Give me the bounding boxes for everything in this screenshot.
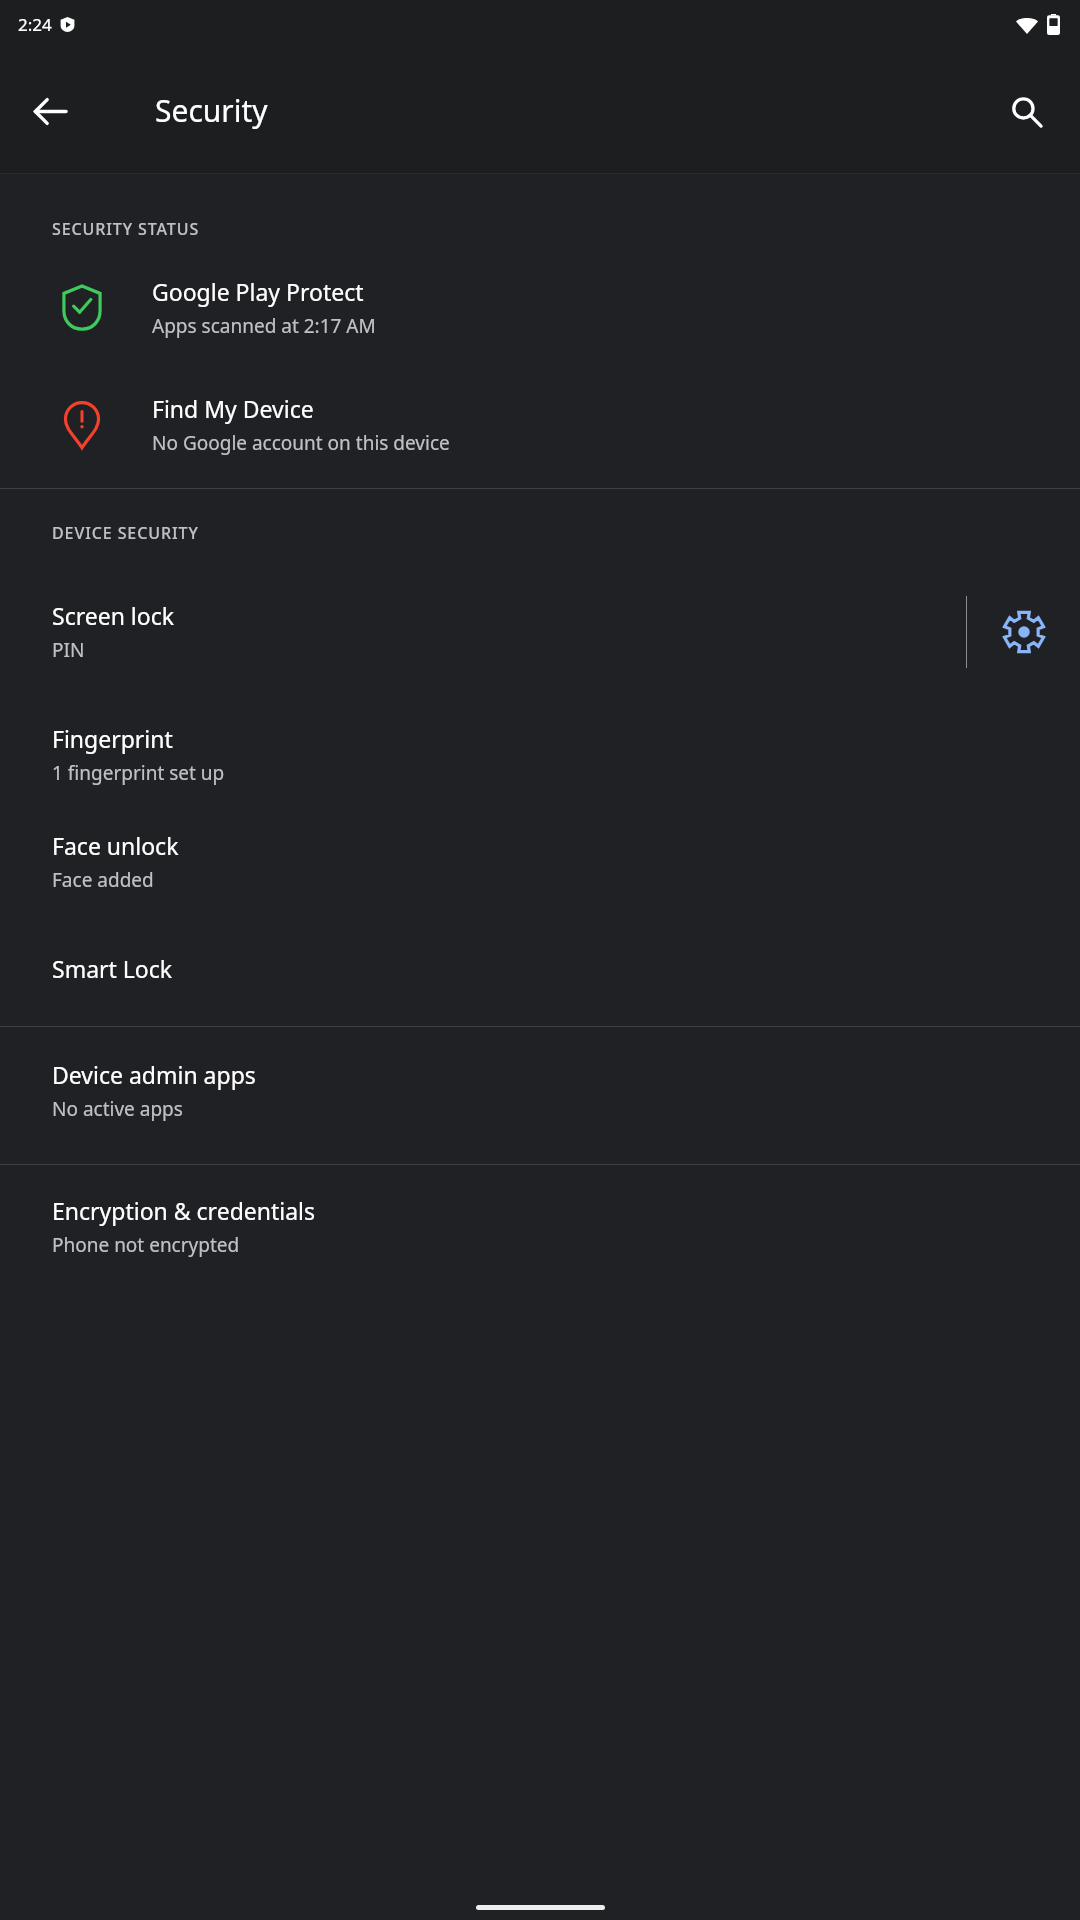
button[interactable]: Device admin apps — [0, 1055, 1080, 1126]
staticText: PIN — [52, 637, 85, 663]
button[interactable]: Smart Lock — [0, 949, 1080, 988]
staticText: Find My Device — [152, 393, 314, 424]
staticText: 1 fingerprint set up — [52, 760, 225, 786]
button[interactable]: Fingerprint — [0, 719, 1080, 790]
staticText: No Google account on this device — [152, 430, 450, 456]
button[interactable]: Face unlock — [0, 826, 1080, 897]
staticText: Fingerprint — [52, 723, 173, 754]
button[interactable]: Google Play Protect — [0, 270, 1080, 345]
button[interactable]: Screen lock — [0, 574, 966, 689]
staticText: SECURITY STATUS — [52, 218, 200, 240]
button[interactable]: Encryption & credentials — [0, 1191, 1080, 1262]
staticText: No active apps — [52, 1096, 183, 1122]
button[interactable]: Back — [14, 75, 86, 147]
button[interactable]: Search — [990, 75, 1062, 147]
button[interactable]: Screen lock settings — [967, 574, 1080, 689]
staticText: Smart Lock — [52, 953, 173, 984]
staticText: Encryption & credentials — [52, 1195, 316, 1226]
button[interactable]: Find My Device — [0, 387, 1080, 462]
staticText: Phone not encrypted — [52, 1232, 240, 1258]
staticText: Face unlock — [52, 830, 179, 861]
staticText: Apps scanned at 2:17 AM — [152, 313, 376, 339]
staticText: Face added — [52, 867, 154, 893]
staticText: DEVICE SECURITY — [52, 522, 199, 544]
staticText: Google Play Protect — [152, 276, 364, 307]
staticText: Screen lock — [52, 600, 175, 631]
staticText: 2:24 — [18, 13, 52, 36]
staticText: Security — [155, 90, 268, 131]
staticText: Device admin apps — [52, 1059, 256, 1090]
